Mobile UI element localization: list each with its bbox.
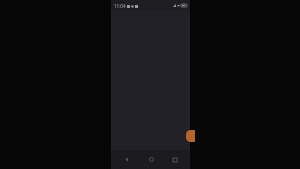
staticText: 11:04	[114, 3, 126, 9]
button[interactable]: Home	[141, 150, 161, 169]
button[interactable]: Action	[186, 130, 195, 142]
button[interactable]: Recents	[165, 150, 185, 169]
button[interactable]: Back	[116, 150, 136, 169]
